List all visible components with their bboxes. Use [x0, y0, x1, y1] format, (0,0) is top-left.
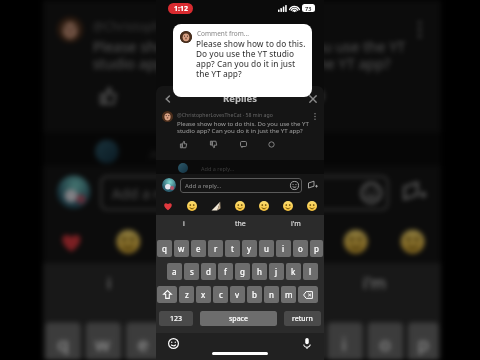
button[interactable]: l — [303, 263, 318, 280]
staticText: i — [341, 329, 349, 355]
button[interactable]: Add a reply... — [185, 178, 299, 193]
button[interactable] — [186, 200, 198, 212]
button[interactable]: Backspace — [298, 286, 318, 303]
button[interactable]: f — [218, 263, 233, 280]
button[interactable]: i — [327, 322, 363, 360]
button[interactable]: Close — [307, 93, 318, 104]
staticText: e — [138, 329, 150, 355]
button[interactable]: t — [206, 322, 242, 360]
button[interactable]: the — [176, 263, 308, 303]
button[interactable] — [57, 16, 83, 43]
button[interactable]: p — [310, 240, 323, 257]
button[interactable]: space — [200, 311, 277, 326]
button[interactable]: return — [284, 311, 321, 326]
staticText: q — [57, 329, 69, 355]
button[interactable]: q — [45, 322, 81, 360]
button[interactable] — [234, 200, 246, 212]
button[interactable] — [162, 178, 176, 192]
button[interactable]: x — [196, 286, 211, 303]
button[interactable] — [210, 200, 222, 212]
staticText: u — [264, 243, 269, 254]
staticText: b — [252, 289, 257, 300]
button[interactable]: d — [201, 263, 216, 280]
button[interactable] — [57, 175, 90, 208]
button[interactable] — [235, 80, 266, 111]
button[interactable]: r — [208, 240, 223, 257]
button[interactable] — [114, 227, 142, 256]
button[interactable] — [301, 80, 332, 111]
button[interactable]: o — [293, 240, 308, 257]
button[interactable]: u — [287, 322, 322, 360]
button[interactable]: y — [242, 240, 257, 257]
button[interactable] — [258, 200, 270, 212]
button[interactable]: v — [230, 286, 245, 303]
button[interactable]: j — [269, 263, 284, 280]
button[interactable]: s — [184, 263, 199, 280]
staticText: c — [219, 289, 223, 300]
staticText: i — [107, 272, 112, 296]
button[interactable] — [162, 200, 174, 212]
button[interactable] — [398, 227, 427, 256]
button[interactable]: w — [86, 322, 121, 360]
button[interactable]: a — [167, 263, 182, 280]
button[interactable]: c — [213, 286, 228, 303]
button[interactable]: o — [368, 322, 403, 360]
button[interactable]: Shift — [157, 286, 177, 303]
staticText: i'm — [291, 219, 301, 229]
button[interactable]: i'm — [308, 263, 441, 303]
button[interactable] — [171, 227, 199, 256]
button[interactable]: u — [259, 240, 274, 257]
button[interactable] — [57, 227, 85, 256]
staticText: t — [231, 243, 234, 254]
button[interactable]: n — [264, 286, 279, 303]
button[interactable]: the — [212, 215, 268, 232]
button[interactable]: b — [247, 286, 262, 303]
button[interactable]: i — [43, 263, 176, 303]
staticText: s — [190, 266, 194, 277]
button[interactable] — [177, 138, 190, 151]
staticText: Add a reply... — [112, 185, 199, 204]
button[interactable]: 123 — [159, 311, 193, 326]
button[interactable]: w — [174, 240, 189, 257]
staticText: h — [257, 266, 262, 277]
button[interactable]: r — [166, 322, 202, 360]
button[interactable]: e — [191, 240, 206, 257]
button[interactable] — [285, 227, 313, 256]
button[interactable]: h — [252, 263, 267, 280]
button[interactable]: q — [157, 240, 172, 257]
button[interactable]: Dictation — [300, 337, 313, 350]
button[interactable]: p — [408, 322, 439, 360]
button[interactable]: Back — [162, 93, 173, 104]
button[interactable] — [282, 200, 294, 212]
button[interactable]: t — [225, 240, 240, 257]
button[interactable]: m — [281, 286, 296, 303]
button[interactable]: Emoji — [167, 337, 180, 350]
staticText: the — [230, 272, 256, 296]
button[interactable]: Add a reply... — [112, 175, 382, 211]
staticText: v — [235, 289, 240, 300]
button[interactable] — [408, 16, 432, 40]
button[interactable]: e — [126, 322, 161, 360]
staticText: y — [259, 329, 270, 355]
button[interactable]: z — [179, 286, 194, 303]
staticText: r — [180, 329, 190, 355]
button[interactable] — [310, 111, 320, 121]
button[interactable] — [237, 138, 250, 151]
button[interactable]: k — [286, 263, 301, 280]
button[interactable]: g — [235, 263, 250, 280]
button[interactable] — [164, 80, 195, 111]
button[interactable] — [265, 138, 278, 151]
button[interactable] — [228, 227, 256, 256]
button[interactable] — [306, 200, 318, 212]
button[interactable]: Add sticker — [398, 175, 432, 208]
button[interactable] — [162, 111, 173, 122]
button[interactable]: y — [247, 322, 282, 360]
staticText: r — [214, 243, 218, 254]
button[interactable]: Add sticker — [306, 178, 320, 192]
button[interactable] — [341, 227, 370, 256]
button[interactable]: i'm — [268, 215, 324, 232]
button[interactable] — [207, 138, 220, 151]
button[interactable] — [93, 80, 123, 111]
button[interactable]: i — [156, 215, 212, 232]
button[interactable]: i — [276, 240, 291, 257]
